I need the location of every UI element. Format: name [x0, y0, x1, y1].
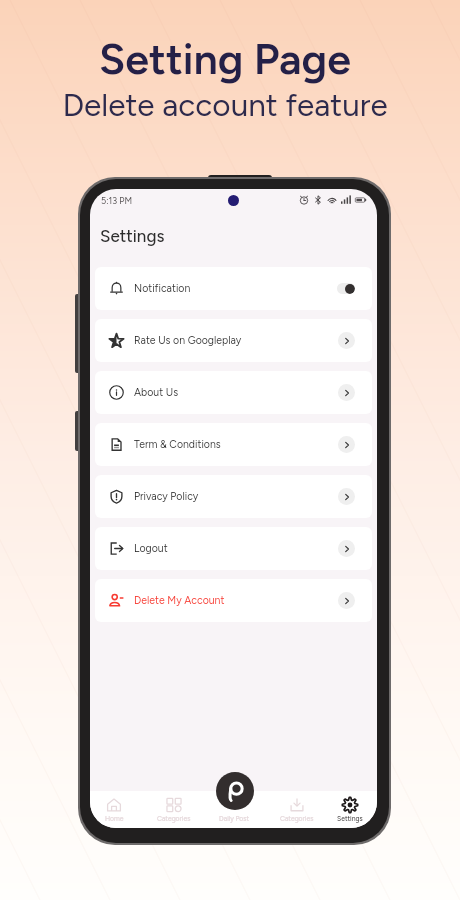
button[interactable]: Notification toggle — [337, 283, 355, 294]
staticText: Delete account feature — [0, 86, 455, 124]
staticText: Categories — [157, 815, 191, 823]
staticText: Home — [105, 815, 124, 823]
staticText: Logout — [134, 542, 168, 555]
button[interactable]: Rate Us on Googleplay — [95, 319, 372, 362]
staticText: About Us — [134, 386, 179, 399]
button[interactable]: Logout — [95, 527, 372, 570]
staticText: Categories — [280, 815, 314, 823]
staticText: Notification — [134, 282, 191, 295]
button[interactable]: Open Term & Conditions — [338, 436, 355, 453]
button[interactable]: Categories — [150, 791, 198, 828]
button[interactable]: Privacy Policy — [95, 475, 372, 518]
staticText: Rate Us on Googleplay — [134, 334, 242, 347]
button[interactable]: Notification — [95, 267, 372, 310]
staticText: Settings — [100, 226, 165, 246]
button[interactable]: Daily Post — [210, 791, 258, 828]
button[interactable]: Daily Post — [216, 772, 254, 810]
staticText: Privacy Policy — [134, 490, 199, 503]
button[interactable]: About Us — [95, 371, 372, 414]
staticText: Settings — [337, 815, 363, 823]
button[interactable]: Settings — [326, 791, 374, 828]
staticText: 5:13 PM — [101, 195, 133, 206]
button[interactable]: Delete My Account — [95, 579, 372, 622]
button[interactable]: Open Delete My Account — [338, 592, 355, 609]
staticText: Setting Page — [0, 33, 455, 85]
staticText: Term & Conditions — [134, 438, 221, 451]
button[interactable]: Open About Us — [338, 384, 355, 401]
button[interactable]: Term & Conditions — [95, 423, 372, 466]
button[interactable]: Open Privacy Policy — [338, 488, 355, 505]
button[interactable]: Open Logout — [338, 540, 355, 557]
staticText: Daily Post — [219, 815, 250, 823]
staticText: Delete My Account — [134, 594, 225, 607]
button[interactable]: Open Rate Us on Googleplay — [338, 332, 355, 349]
button[interactable]: Home — [90, 791, 138, 828]
button[interactable]: Categories — [273, 791, 321, 828]
